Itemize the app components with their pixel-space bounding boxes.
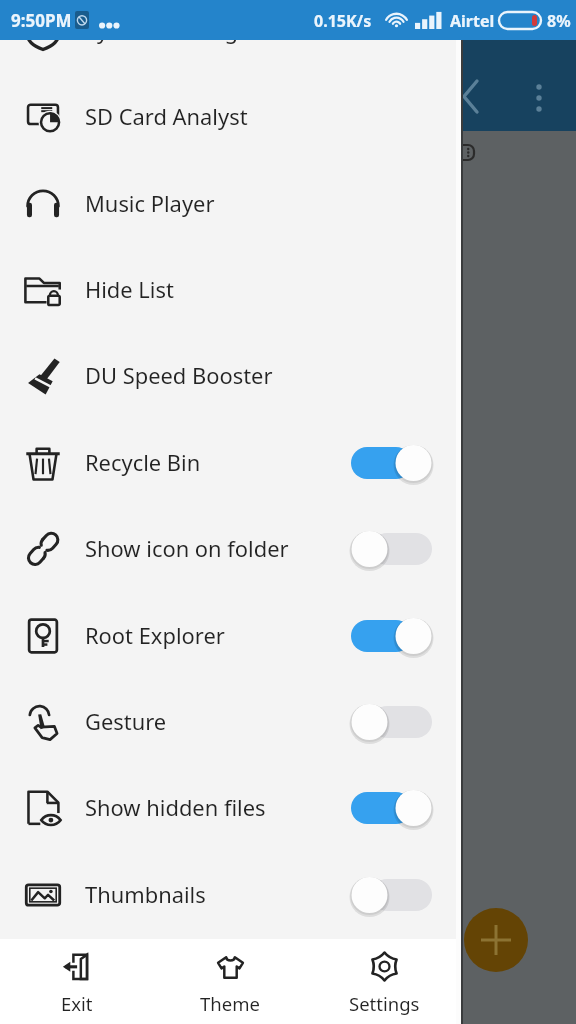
staticText: 0.15K/s bbox=[314, 10, 372, 32]
button[interactable]: Hide List bbox=[0, 247, 461, 333]
staticText: 8% bbox=[547, 10, 571, 32]
button[interactable]: Music Player bbox=[0, 161, 461, 247]
staticText: Thumbnails bbox=[85, 880, 206, 910]
button[interactable]: System Settings bbox=[0, 0, 461, 74]
button[interactable]: Recycle Bin bbox=[0, 420, 461, 506]
button[interactable]: DU Speed Booster bbox=[0, 333, 461, 419]
button[interactable]: Exit bbox=[0, 939, 153, 1024]
staticText: Root Explorer bbox=[85, 621, 225, 651]
staticText: 9:50PM bbox=[11, 9, 72, 32]
staticText: Theme bbox=[200, 991, 260, 1016]
staticText: Exit bbox=[61, 991, 93, 1016]
button[interactable]: SD Card Analyst bbox=[0, 74, 461, 160]
button[interactable]: Settings bbox=[307, 939, 461, 1024]
button[interactable]: Root Explorer bbox=[0, 593, 461, 679]
button[interactable]: Add bbox=[464, 908, 528, 972]
staticText: Music Player bbox=[85, 189, 215, 219]
staticText: Show hidden files bbox=[85, 793, 266, 823]
staticText: Gesture bbox=[85, 707, 167, 737]
button[interactable]: Show icon on folder bbox=[0, 506, 461, 592]
staticText: System Settings bbox=[85, 16, 249, 46]
staticText: Recycle Bin bbox=[85, 448, 201, 478]
staticText: DU Speed Booster bbox=[85, 361, 273, 391]
staticText: Airtel bbox=[450, 10, 495, 32]
button[interactable]: Gesture bbox=[0, 679, 461, 765]
button[interactable]: Show hidden files bbox=[0, 765, 461, 851]
button[interactable]: Theme bbox=[153, 939, 307, 1024]
staticText: Settings bbox=[349, 991, 420, 1016]
staticText: Hide List bbox=[85, 275, 174, 305]
staticText: Show icon on folder bbox=[85, 534, 289, 564]
staticText: SD Card Analyst bbox=[85, 102, 248, 132]
button[interactable]: Thumbnails bbox=[0, 852, 461, 938]
